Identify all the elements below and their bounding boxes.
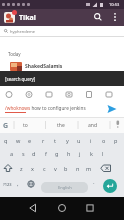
button[interactable]: [106, 103, 118, 115]
staticText: a: [10, 150, 14, 157]
button[interactable]: n: [73, 163, 83, 174]
button[interactable]: [4, 12, 15, 23]
button[interactable]: h: [64, 148, 74, 159]
button[interactable]: m: [84, 163, 94, 174]
button[interactable]: c: [39, 163, 49, 174]
staticText: j: [79, 150, 81, 157]
button[interactable]: f: [41, 148, 51, 159]
button[interactable]: .: [93, 178, 95, 186]
staticText: r: [42, 137, 45, 144]
staticText: b: [64, 165, 68, 172]
button[interactable]: [110, 12, 120, 22]
staticText: c: [43, 165, 46, 172]
button[interactable]: to: [23, 122, 28, 129]
button[interactable]: s: [18, 148, 28, 159]
staticText: s: [22, 150, 25, 157]
button[interactable]: ,: [17, 180, 19, 188]
button[interactable]: v: [50, 163, 60, 174]
staticText: g: [55, 150, 59, 157]
staticText: o: [102, 137, 106, 144]
staticText: p: [114, 137, 118, 144]
button[interactable]: r: [38, 135, 48, 146]
button[interactable]: ?123: [3, 182, 12, 187]
staticText: i: [90, 137, 92, 144]
staticText: z: [20, 165, 23, 172]
button[interactable]: ShakedSalamis: [10, 62, 63, 71]
staticText: hyphendeme: [10, 29, 35, 34]
button[interactable]: e: [25, 135, 35, 146]
staticText: [search query]: [5, 76, 36, 82]
staticText: /whoknows how to configure jenkins: [5, 105, 86, 111]
button[interactable]: x: [27, 163, 37, 174]
staticText: h: [67, 150, 71, 157]
staticText: e: [28, 137, 32, 144]
staticText: d: [32, 150, 36, 157]
button[interactable]: y: [62, 135, 72, 146]
staticText: y: [66, 137, 69, 144]
button[interactable]: English: [41, 182, 88, 193]
button[interactable]: the: [57, 122, 65, 129]
button[interactable]: g: [52, 148, 62, 159]
staticText: f: [45, 150, 47, 157]
button[interactable]: hyphendeme: [0, 26, 124, 37]
button[interactable]: and: [88, 122, 97, 129]
button[interactable]: [103, 179, 117, 193]
staticText: v: [54, 165, 57, 172]
button[interactable]: b: [61, 163, 71, 174]
staticText: l: [102, 150, 104, 157]
staticText: w: [16, 137, 21, 144]
button[interactable]: z: [16, 163, 26, 174]
staticText: G: [3, 121, 9, 131]
staticText: 10:53: [109, 2, 120, 7]
button[interactable]: l: [98, 148, 108, 159]
button[interactable]: j: [75, 148, 85, 159]
staticText: t: [54, 137, 56, 144]
button[interactable]: u: [74, 135, 84, 146]
button[interactable]: q: [1, 135, 11, 146]
button[interactable]: [56, 202, 68, 214]
button[interactable]: a: [7, 148, 17, 159]
button[interactable]: p: [111, 135, 121, 146]
button[interactable]: [93, 12, 103, 22]
staticText: x: [31, 165, 34, 172]
button[interactable]: [27, 202, 39, 214]
staticText: n: [76, 165, 80, 172]
staticText: English: [58, 185, 72, 190]
button[interactable]: t: [50, 135, 60, 146]
staticText: k: [90, 150, 93, 157]
button[interactable]: w: [13, 135, 23, 146]
button[interactable]: d: [29, 148, 39, 159]
button[interactable]: [84, 202, 96, 214]
staticText: u: [77, 137, 81, 144]
staticText: Tikal: [19, 13, 36, 23]
button[interactable]: k: [86, 148, 96, 159]
staticText: m: [86, 165, 92, 172]
staticText: Today: [8, 51, 21, 57]
button[interactable]: o: [99, 135, 109, 146]
button[interactable]: i: [86, 135, 96, 146]
staticText: ShakedSalamis: [25, 63, 63, 70]
staticText: q: [4, 137, 8, 144]
